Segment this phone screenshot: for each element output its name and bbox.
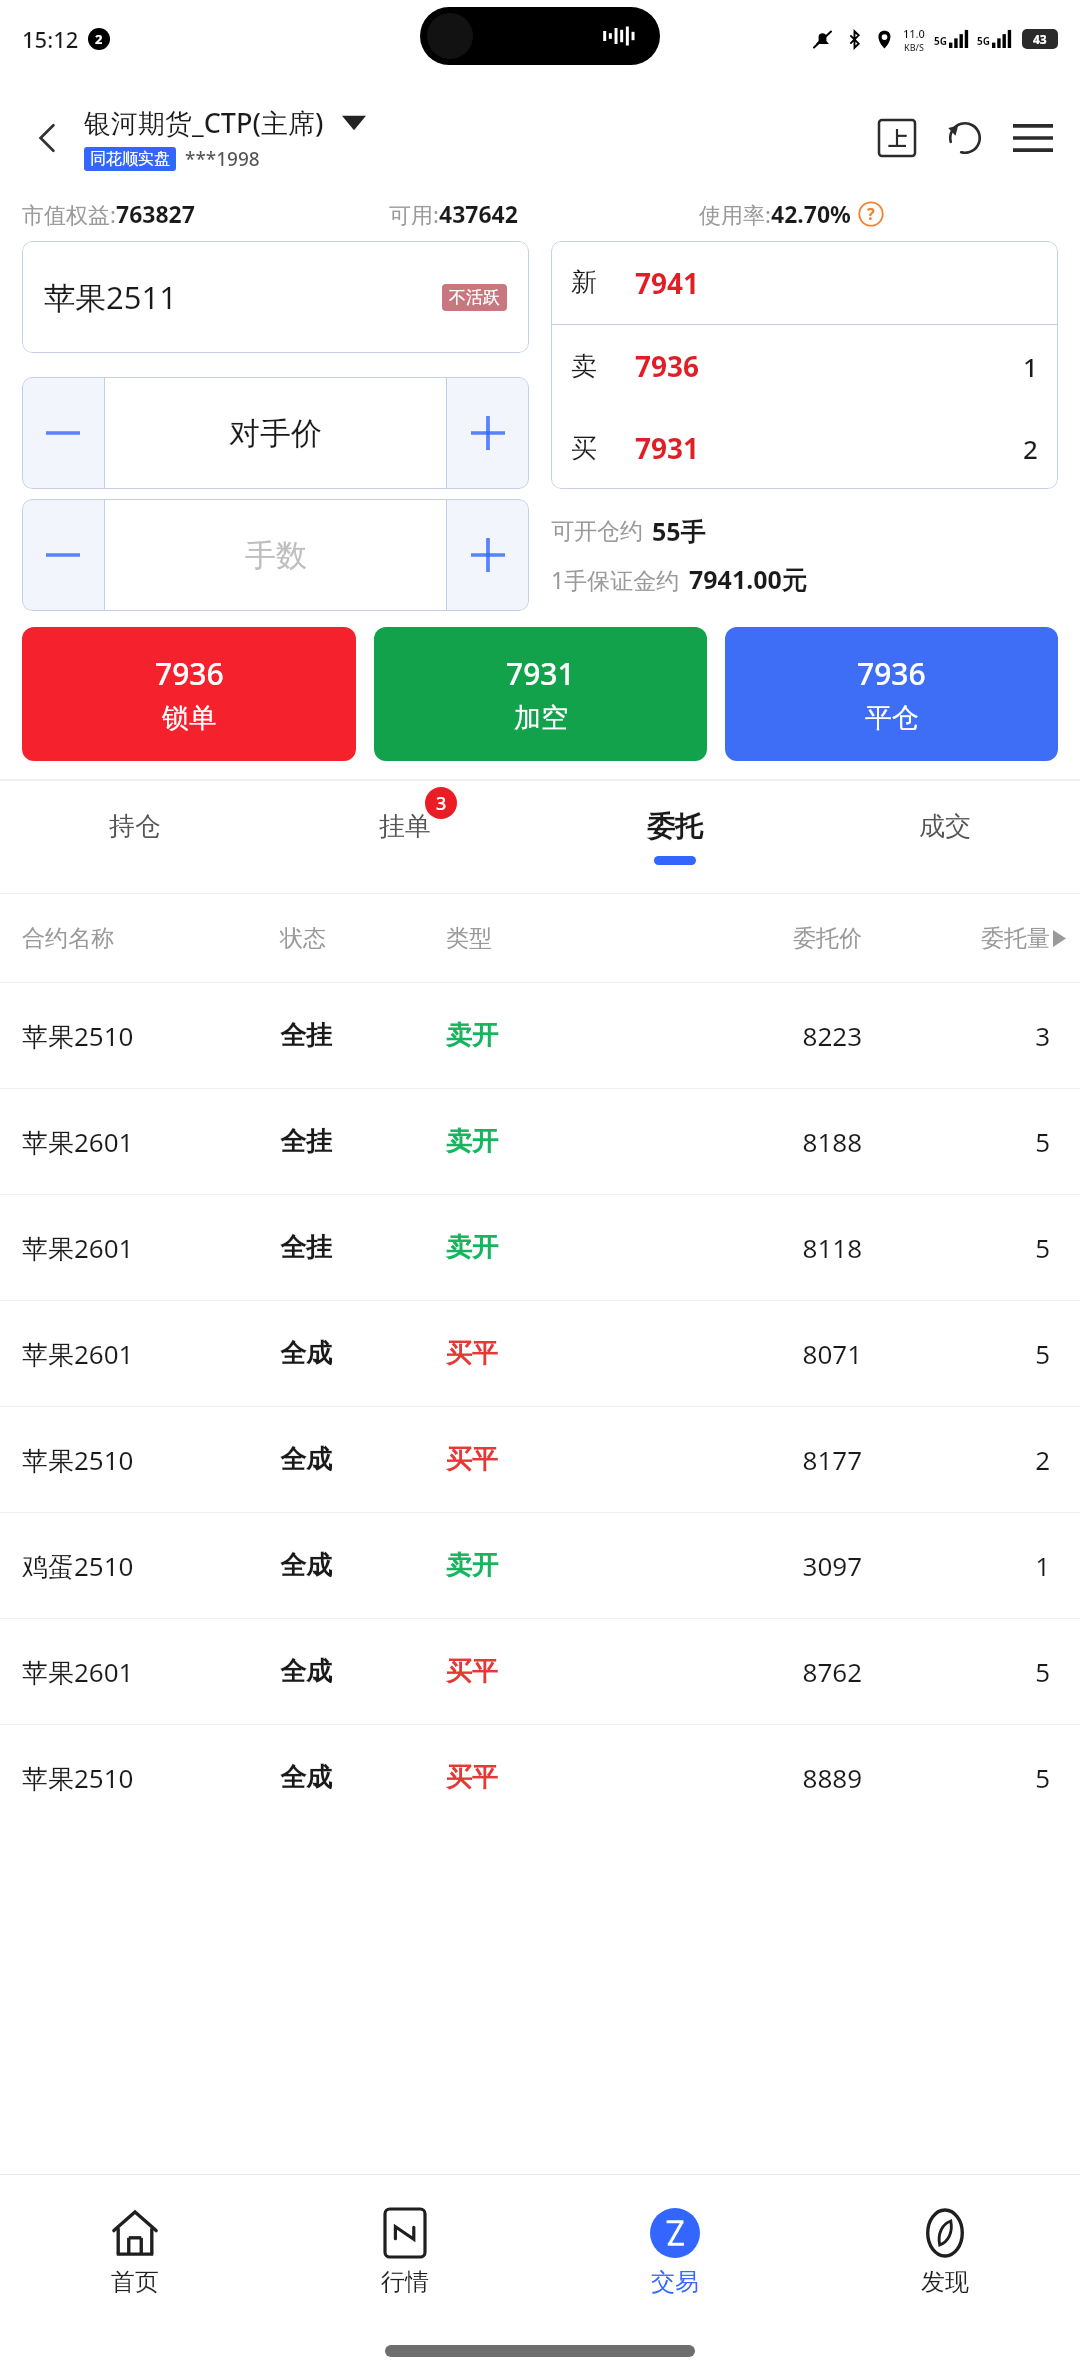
staticText: 行情	[381, 2267, 429, 2297]
staticText: 卖	[571, 350, 597, 383]
button[interactable]: 7931	[374, 627, 707, 761]
button[interactable]: 手数	[105, 499, 446, 611]
staticText: 5	[884, 1230, 1050, 1265]
button[interactable]: 对手价	[105, 377, 446, 489]
staticText: 苹果2601	[22, 1336, 280, 1372]
staticText: 2	[884, 1442, 1050, 1477]
staticText: 5	[884, 1124, 1050, 1159]
staticText: ?	[867, 203, 875, 225]
button[interactable]: Decrease	[22, 499, 104, 611]
staticText: 买平	[446, 1337, 646, 1370]
button[interactable]: Switch account	[338, 110, 370, 135]
button[interactable]: 苹果2511	[22, 241, 529, 353]
button[interactable]: Increase	[447, 377, 529, 489]
staticText: 交易	[651, 2267, 699, 2297]
button[interactable]: 首页	[0, 2175, 270, 2327]
staticText: 7941	[635, 264, 700, 302]
button[interactable]: 交易	[540, 2175, 810, 2327]
staticText: 5	[884, 1654, 1050, 1689]
button[interactable]: Menu	[1004, 109, 1062, 167]
staticText: 7941.00元	[689, 562, 807, 596]
button[interactable]: 苹果2601	[0, 1195, 1080, 1300]
staticText: 8223	[646, 1018, 862, 1053]
button[interactable]: Increase	[447, 499, 529, 611]
button[interactable]: 挂单	[270, 781, 540, 893]
staticText: 苹果2510	[22, 1760, 280, 1796]
button[interactable]: Decrease	[22, 377, 104, 489]
staticText: 委托价	[646, 924, 862, 953]
staticText: 苹果2601	[22, 1654, 280, 1690]
staticText: 苹果2510	[22, 1018, 280, 1054]
staticText: 苹果2511	[44, 276, 177, 318]
button[interactable]: 苹果2510	[0, 1725, 1080, 1830]
staticText: 加空	[514, 701, 568, 735]
button[interactable]: 苹果2601	[0, 1301, 1080, 1406]
staticText: 手数	[245, 536, 307, 575]
button[interactable]: 苹果2510	[0, 1407, 1080, 1512]
staticText: ***1998	[185, 146, 260, 172]
button[interactable]: 委托	[540, 781, 810, 893]
button[interactable]: 苹果2601	[0, 1619, 1080, 1724]
button[interactable]: 7936	[22, 627, 356, 761]
staticText: 卖开	[446, 1125, 646, 1158]
staticText: 买平	[446, 1655, 646, 1688]
button[interactable]: Back	[18, 109, 76, 167]
staticText: 全成	[280, 1549, 446, 1582]
staticText: 5	[884, 1760, 1050, 1795]
staticText: 3	[884, 1018, 1050, 1053]
staticText: 苹果2601	[22, 1230, 280, 1266]
staticText: 挂单	[379, 810, 431, 843]
staticText: 卖开	[446, 1549, 646, 1582]
staticText: 新	[571, 266, 597, 299]
staticText: 8889	[646, 1760, 862, 1795]
staticText: 苹果2601	[22, 1124, 280, 1160]
staticText: 5	[884, 1336, 1050, 1371]
staticText: KB/S	[904, 41, 924, 53]
button[interactable]: 发现	[810, 2175, 1080, 2327]
staticText: 763827	[116, 198, 195, 229]
staticText: 全挂	[280, 1231, 446, 1264]
staticText: 8177	[646, 1442, 862, 1477]
staticText: 对手价	[229, 414, 322, 453]
button[interactable]: Help	[857, 200, 885, 228]
staticText: 全成	[280, 1337, 446, 1370]
staticText: 持仓	[109, 810, 161, 843]
staticText: 7936	[155, 653, 224, 694]
staticText: 可开仓约	[551, 517, 643, 546]
staticText: 平仓	[865, 701, 919, 735]
staticText: 1	[1023, 349, 1038, 384]
staticText: 42.70%	[771, 198, 851, 229]
staticText: 7936	[857, 653, 926, 694]
staticText: 7936	[635, 347, 700, 385]
staticText: 卖开	[446, 1231, 646, 1264]
staticText: 同花顺实盘	[90, 149, 170, 169]
staticText: 15:12	[22, 24, 79, 54]
button[interactable]: 行情	[270, 2175, 540, 2327]
button[interactable]: 鸡蛋2510	[0, 1513, 1080, 1618]
button[interactable]: 苹果2601	[0, 1089, 1080, 1194]
button[interactable]: 苹果2510	[0, 983, 1080, 1088]
button[interactable]: 7936	[725, 627, 1058, 761]
staticText: 11.0	[903, 26, 925, 41]
button[interactable]: 卖	[551, 325, 1058, 407]
button[interactable]: 新	[551, 241, 1058, 324]
staticText: 卖开	[446, 1019, 646, 1052]
staticText: 2	[1023, 431, 1038, 466]
button[interactable]: 持仓	[0, 781, 270, 893]
staticText: 使用率:	[699, 199, 771, 229]
staticText: 苹果2510	[22, 1442, 280, 1478]
button[interactable]: Stop orders	[868, 109, 926, 167]
staticText: 全挂	[280, 1019, 446, 1052]
staticText: 买平	[446, 1761, 646, 1794]
staticText: 银河期货_CTP(主席)	[84, 104, 324, 141]
button[interactable]: Refresh	[936, 109, 994, 167]
staticText: 2	[95, 30, 103, 48]
staticText: 43	[1033, 31, 1047, 47]
staticText: 5G	[934, 34, 947, 48]
staticText: 可用:	[389, 199, 439, 229]
staticText: 8762	[646, 1654, 862, 1689]
button[interactable]: 买	[551, 407, 1058, 489]
staticText: 1	[884, 1548, 1050, 1583]
staticText: 55手	[652, 514, 706, 548]
button[interactable]: 成交	[810, 781, 1080, 893]
